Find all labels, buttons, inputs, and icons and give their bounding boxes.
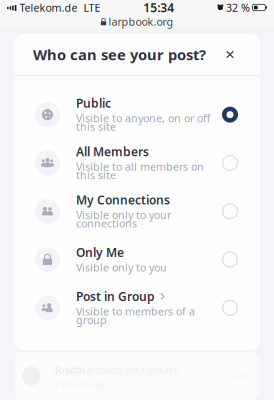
button[interactable]: Close bbox=[219, 43, 241, 65]
button[interactable]: Post in Group bbox=[14, 284, 260, 332]
staticText: Visible to all members on bbox=[76, 159, 204, 174]
button[interactable]: All Members bbox=[14, 139, 260, 187]
staticText: this site bbox=[76, 120, 116, 134]
staticText: Who can see your post? bbox=[33, 45, 206, 64]
button[interactable]: My Connections bbox=[14, 187, 260, 235]
button[interactable]: Public bbox=[14, 90, 260, 139]
staticText: this site bbox=[76, 168, 116, 182]
staticText: 32 % bbox=[226, 0, 250, 15]
staticText: Visible only to you bbox=[76, 260, 167, 274]
staticText: Telekom.de bbox=[16, 0, 77, 15]
staticText: Post in Group bbox=[76, 288, 155, 304]
staticText: Joschi bbox=[55, 362, 85, 376]
staticText: All Members bbox=[76, 143, 149, 159]
staticText: larpbook.org bbox=[108, 14, 173, 29]
staticText: connections bbox=[76, 216, 137, 230]
staticText: posted an update bbox=[88, 362, 179, 376]
button[interactable]: Only Me bbox=[14, 235, 260, 284]
staticText: Visible to anyone, on or off bbox=[76, 111, 210, 125]
staticText: Only Me bbox=[76, 244, 124, 260]
staticText: Like bbox=[233, 370, 250, 382]
staticText: My Connections bbox=[76, 192, 170, 208]
staticText: Visible to members of a bbox=[76, 304, 195, 318]
staticText: Visible only to your bbox=[76, 208, 171, 222]
staticText: group bbox=[76, 313, 107, 327]
staticText: 15:34 bbox=[143, 0, 174, 15]
staticText: LTE bbox=[77, 0, 100, 15]
staticText: Public bbox=[76, 95, 111, 111]
